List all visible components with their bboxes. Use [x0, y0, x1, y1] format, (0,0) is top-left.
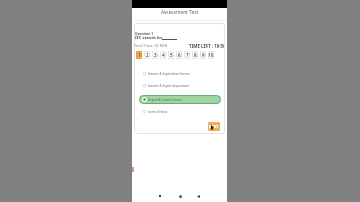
- button[interactable]: Income & Expenditure licence: [139, 69, 221, 78]
- staticText: 4: [162, 52, 165, 58]
- staticText: NEXT: [209, 124, 219, 129]
- staticText: IEC stands for: [135, 35, 163, 40]
- staticText: 9: [202, 52, 205, 58]
- staticText: 3: [154, 52, 157, 58]
- staticText: Assessment Test: [161, 9, 199, 16]
- staticText: 1: [138, 52, 141, 58]
- button[interactable]: none of these: [139, 107, 221, 116]
- staticText: 5: [170, 52, 173, 58]
- staticText: 7: [186, 52, 189, 58]
- button[interactable]: 2: [144, 51, 150, 59]
- button[interactable]: 7: [184, 51, 190, 59]
- button[interactable]: Recents: [156, 192, 164, 200]
- staticText: Import & Export Licence: [148, 98, 183, 102]
- staticText: Total Time: 20 MIN: [134, 43, 168, 48]
- staticText: 2: [146, 52, 149, 58]
- staticText: 6: [178, 52, 181, 58]
- button[interactable]: 10: [208, 51, 214, 59]
- staticText: Income & Export department: [148, 84, 190, 88]
- staticText: 8: [194, 52, 197, 58]
- button[interactable]: 3: [152, 51, 158, 59]
- staticText: TIME LEFT : 19:50: [189, 43, 225, 49]
- staticText: none of these: [148, 110, 168, 114]
- button[interactable]: Home: [176, 192, 184, 200]
- button[interactable]: NEXT: [208, 122, 220, 131]
- button[interactable]: 1: [136, 51, 142, 59]
- button[interactable]: 8: [192, 51, 198, 59]
- staticText: 10: [208, 52, 214, 58]
- button[interactable]: Back: [194, 192, 202, 200]
- staticText: Question 1: [135, 31, 154, 36]
- staticText: Income & Expenditure licence: [148, 72, 190, 76]
- button[interactable]: 6: [176, 51, 182, 59]
- button[interactable]: Income & Export department: [139, 81, 221, 90]
- button[interactable]: 9: [200, 51, 206, 59]
- button[interactable]: 5: [168, 51, 174, 59]
- button[interactable]: Import & Export Licence: [139, 95, 221, 104]
- button[interactable]: 4: [160, 51, 166, 59]
